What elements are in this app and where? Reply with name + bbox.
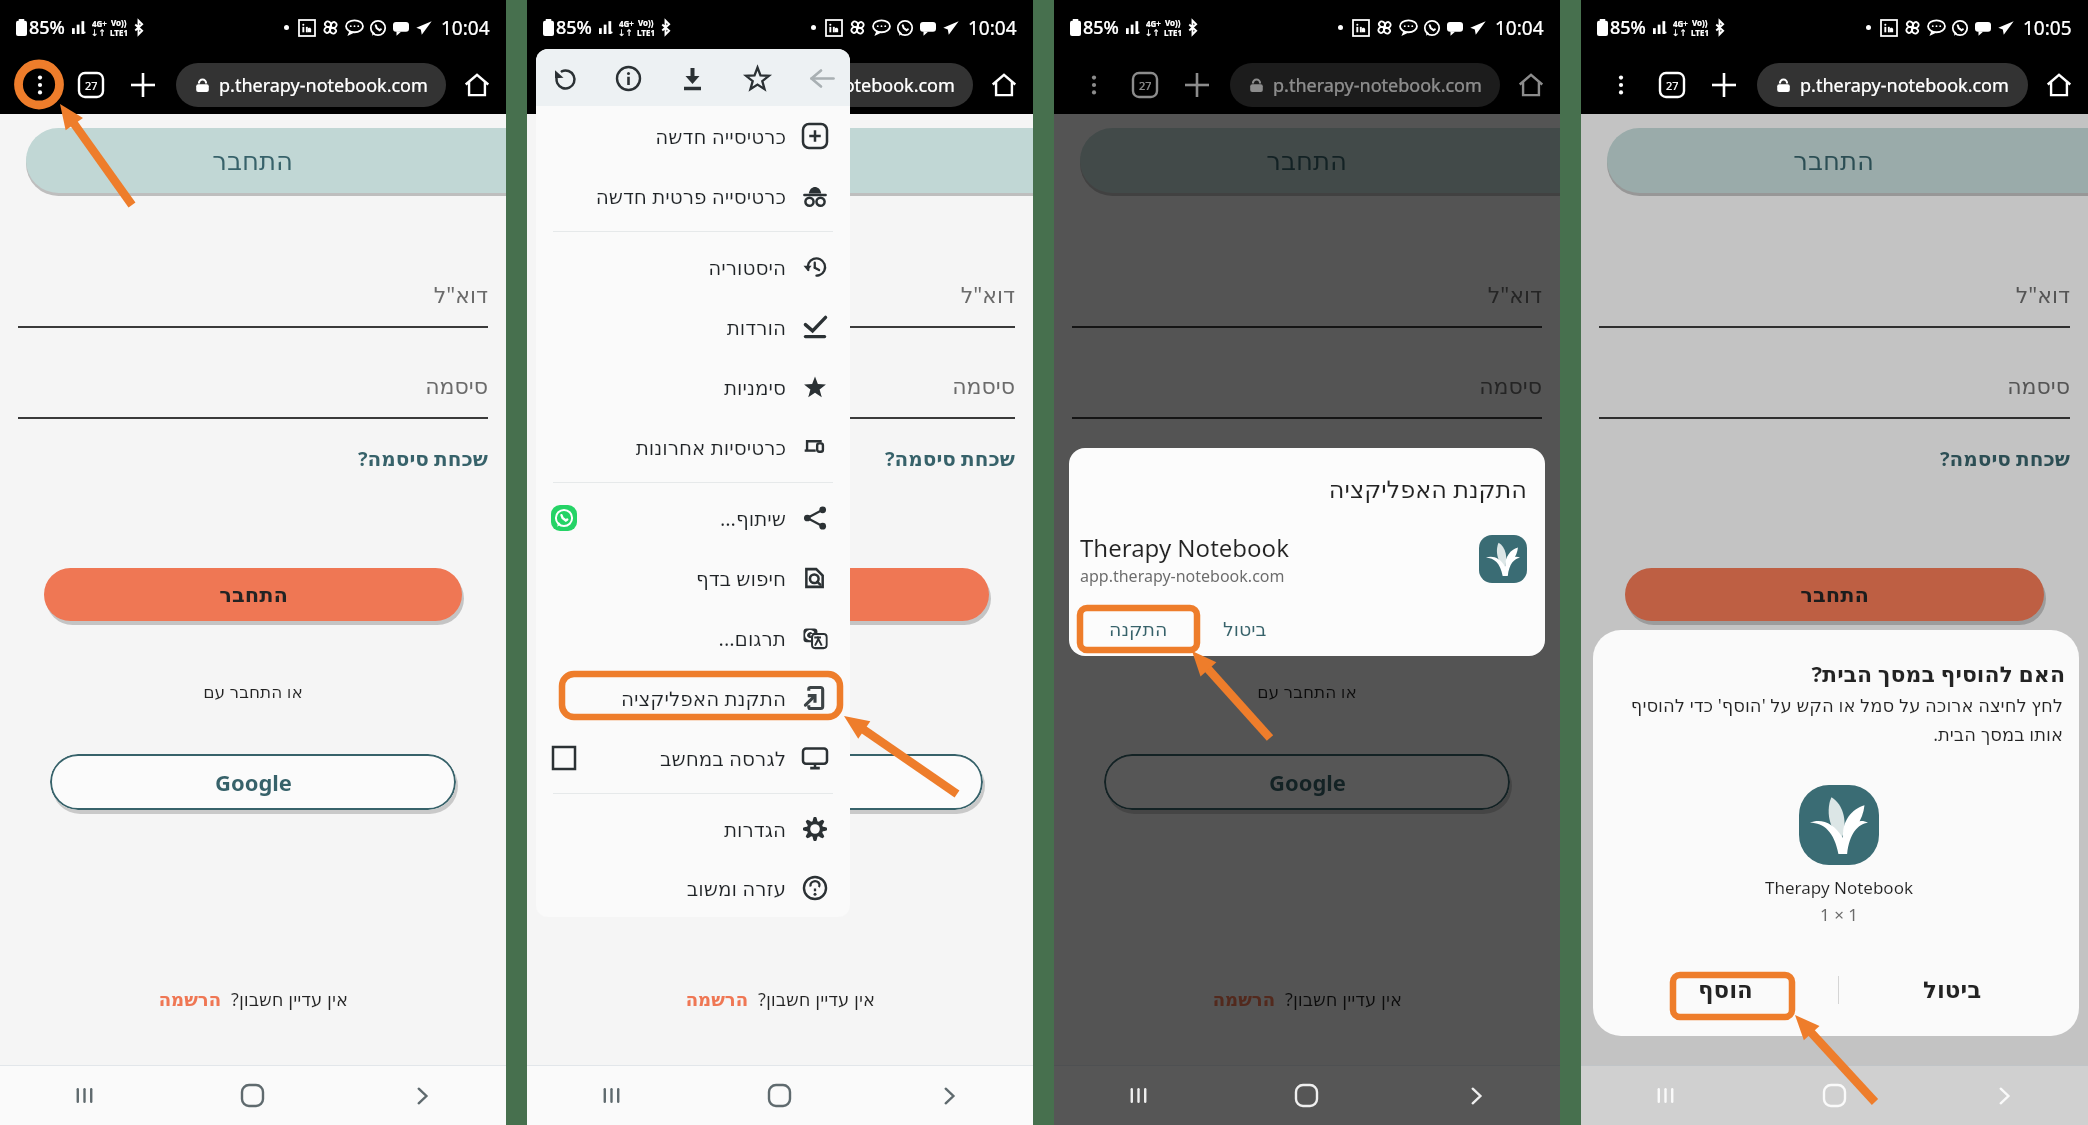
button[interactable]: שכחת סיסמה?	[18, 445, 488, 472]
button[interactable]: הגדרות	[536, 799, 850, 859]
button[interactable]: Home	[460, 68, 494, 102]
staticText: Google	[1796, 767, 1874, 797]
staticText: 10:04	[968, 15, 1017, 41]
staticText: סיסמה	[18, 374, 488, 400]
button[interactable]: Back	[337, 1066, 506, 1125]
button[interactable]: p.therapy-notebook.com	[1757, 63, 2028, 107]
staticText: 10:04	[1495, 15, 1544, 41]
staticText: Therapy Notebook	[1080, 531, 1289, 564]
button[interactable]: New tab	[654, 69, 686, 101]
button[interactable]: כרטיסייה פרטית חדשה	[536, 166, 850, 226]
button[interactable]: Tabs	[1656, 69, 1688, 101]
button[interactable]: הרשמה	[1740, 989, 1803, 1010]
button[interactable]: Home	[168, 1066, 337, 1125]
button[interactable]: הרשמה	[1212, 989, 1275, 1010]
button[interactable]: Back	[1391, 1066, 1560, 1125]
button[interactable]: Recent apps	[527, 1066, 695, 1125]
button[interactable]: Forward	[800, 56, 844, 100]
button[interactable]: New tab	[1181, 69, 1213, 101]
button[interactable]: הורדות	[536, 297, 850, 357]
button[interactable]: Recent apps	[1054, 1066, 1222, 1125]
button[interactable]: More options	[26, 71, 54, 99]
button[interactable]: שכחת סיסמה?	[1599, 445, 2070, 472]
button[interactable]: לגרסה במחשב	[536, 728, 850, 788]
button[interactable]: ביטול	[1839, 954, 2065, 1026]
button[interactable]: סימניות	[536, 357, 850, 417]
staticText: סיסמה	[1072, 374, 1542, 400]
button[interactable]: תרגום...	[536, 608, 850, 668]
button[interactable]: חיפוש בדף	[536, 548, 850, 608]
button[interactable]: כרטיסייה חדשה	[536, 106, 850, 166]
button[interactable]: Home	[1222, 1066, 1391, 1125]
button[interactable]: Google	[50, 754, 456, 810]
button[interactable]: התחבר	[1098, 568, 1516, 621]
staticText: 10:05	[2023, 15, 2072, 41]
button[interactable]: Home	[1514, 68, 1548, 102]
button[interactable]: Back	[864, 1066, 1033, 1125]
staticText: 85%	[29, 15, 65, 40]
staticText: התחבר	[739, 146, 820, 176]
button[interactable]: שיתוף...	[536, 488, 850, 548]
staticText: 27	[612, 78, 625, 93]
staticText: 4G+	[1146, 18, 1161, 29]
staticText: אין עדיין חשבון?	[1813, 987, 1930, 1012]
button[interactable]: שכחת סיסמה?	[1072, 445, 1542, 472]
button[interactable]: היסטוריה	[536, 237, 850, 297]
staticText: הורדות	[578, 316, 786, 339]
button[interactable]: Home	[1750, 1066, 1919, 1125]
button[interactable]: Home	[987, 68, 1021, 102]
button[interactable]: שכחת סיסמה?	[545, 445, 1015, 472]
button[interactable]: Bookmark	[735, 56, 779, 100]
staticText: LTE1	[637, 27, 655, 38]
staticText: שיתוף...	[578, 505, 786, 532]
button[interactable]: New tab	[1708, 69, 1740, 101]
button[interactable]: More options	[1607, 71, 1635, 99]
staticText: 1 × 1	[1613, 903, 2065, 926]
staticText: התחבר	[1793, 146, 1874, 176]
button[interactable]: Tabs	[1129, 69, 1161, 101]
button[interactable]: התחבר	[1607, 128, 2088, 193]
button[interactable]: Home	[695, 1066, 864, 1125]
staticText: האם להוסיף במסך הבית?	[1613, 658, 2065, 688]
button[interactable]: התקנת האפליקציה	[536, 668, 850, 728]
button[interactable]: התחבר	[553, 128, 1033, 193]
staticText: התחבר	[746, 583, 815, 607]
button[interactable]: More options	[1080, 71, 1108, 99]
staticText: app.therapy-notebook.com	[1080, 565, 1285, 587]
button[interactable]: Home	[2042, 68, 2076, 102]
button[interactable]: Reload	[542, 56, 586, 100]
button[interactable]: הרשמה	[685, 989, 748, 1010]
button[interactable]: Tabs	[75, 69, 107, 101]
button[interactable]: More options	[553, 71, 581, 99]
button[interactable]: p.therapy-notebook.com	[1230, 63, 1500, 107]
button[interactable]: התחבר	[26, 128, 506, 193]
button[interactable]: עזרה ומשוב	[536, 859, 850, 917]
button[interactable]: Page info	[606, 56, 650, 100]
button[interactable]: New tab	[127, 69, 159, 101]
button[interactable]: התחבר	[571, 568, 989, 621]
button[interactable]: Download	[670, 56, 714, 100]
staticText: דוא"ל	[545, 279, 1015, 309]
button[interactable]: הרשמה	[158, 989, 221, 1010]
button[interactable]: התחבר	[1080, 128, 1560, 193]
button[interactable]: התחבר	[1625, 568, 2044, 621]
button[interactable]: Recent apps	[1581, 1066, 1750, 1125]
staticText: או התחבר עם	[1581, 680, 2088, 703]
button[interactable]: Recent apps	[0, 1066, 168, 1125]
button[interactable]: Tabs	[602, 69, 634, 101]
staticText: סיסמה	[545, 374, 1015, 400]
button[interactable]: Google	[1104, 754, 1510, 810]
button[interactable]: הוסף	[1613, 954, 1838, 1026]
button[interactable]: ביטול	[1209, 608, 1281, 650]
staticText: Google	[214, 767, 292, 797]
button[interactable]: Google	[1631, 754, 2038, 810]
button[interactable]: p.therapy-notebook.com	[703, 63, 973, 107]
button[interactable]: Google	[577, 754, 983, 810]
button[interactable]: התקנה	[1080, 608, 1197, 650]
button[interactable]: כרטיסיות אחרונות	[536, 417, 850, 477]
staticText: כרטיסייה פרטית חדשה	[578, 183, 786, 210]
staticText: p.therapy-notebook.com	[746, 73, 955, 98]
button[interactable]: התחבר	[44, 568, 462, 621]
button[interactable]: p.therapy-notebook.com	[176, 63, 446, 107]
